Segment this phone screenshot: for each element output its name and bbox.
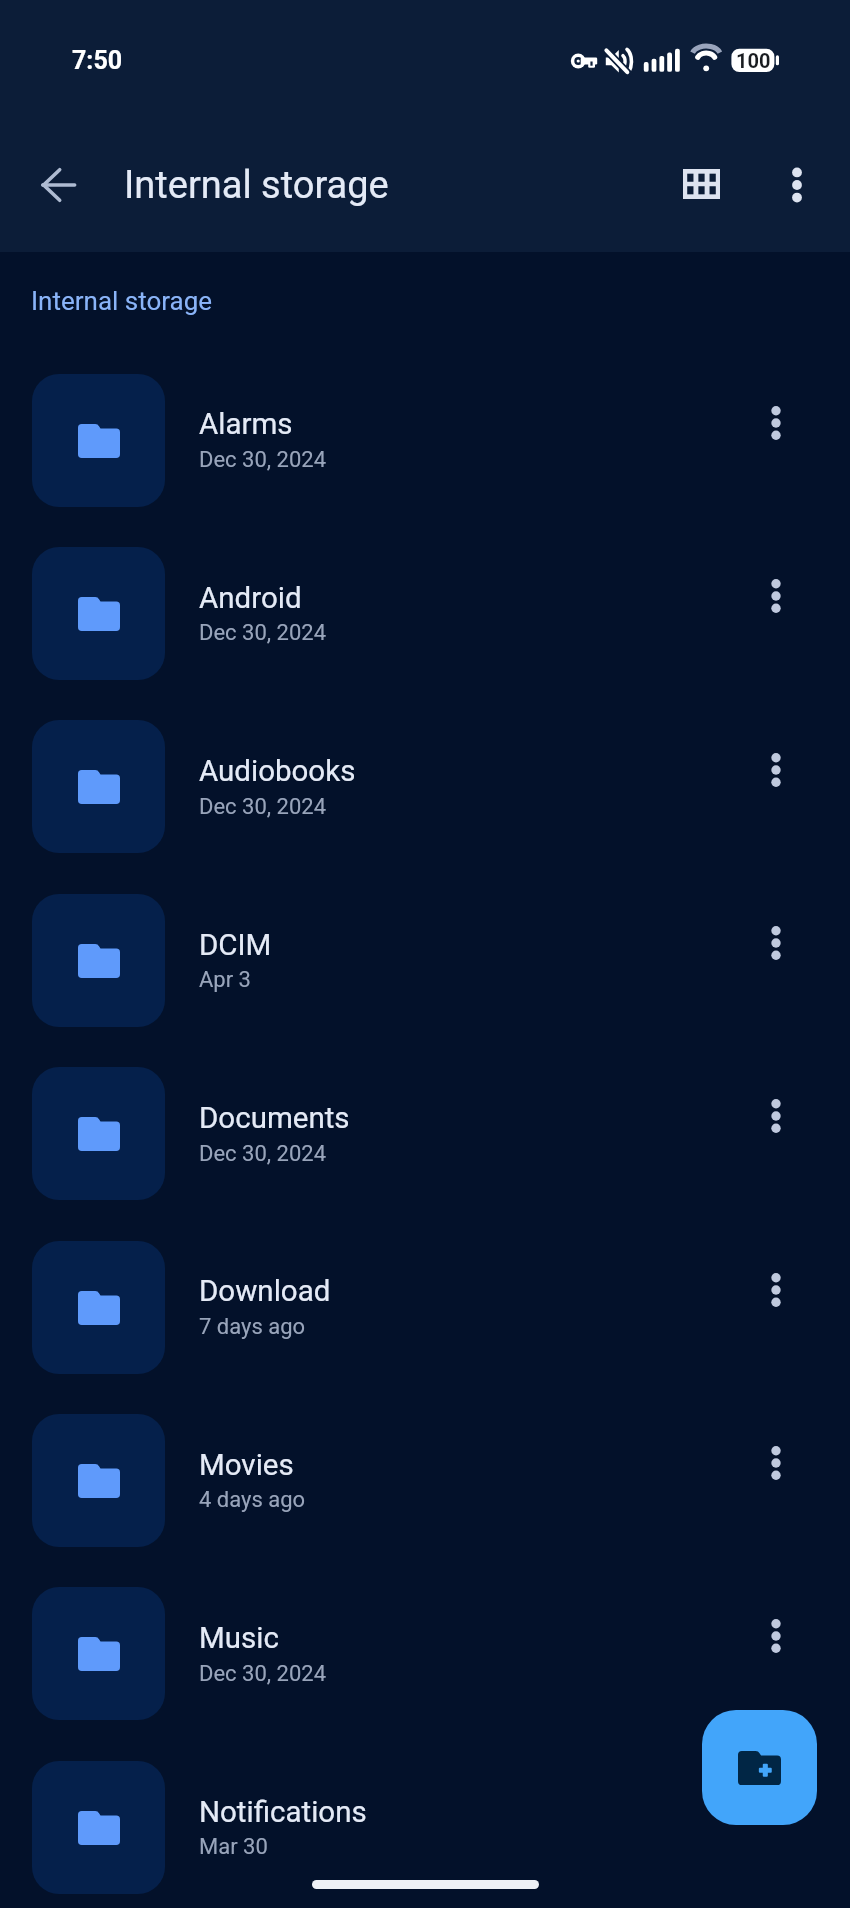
button[interactable] [0, 1566, 850, 1739]
button[interactable]: More options [738, 1425, 814, 1501]
button[interactable] [0, 699, 850, 872]
button[interactable]: Create new folder [702, 1710, 817, 1825]
button[interactable]: More options [738, 1078, 814, 1154]
button[interactable] [0, 873, 850, 1046]
staticText: Apr 3 [199, 967, 251, 993]
button[interactable]: Back [21, 148, 94, 221]
button[interactable]: More options [738, 558, 814, 634]
staticText: Notifications [199, 1795, 367, 1830]
staticText: Dec 30, 2024 [199, 794, 327, 820]
staticText: Dec 30, 2024 [199, 620, 327, 646]
staticText: 4 days ago [199, 1487, 306, 1513]
staticText: Dec 30, 2024 [199, 447, 327, 473]
button[interactable] [0, 1393, 850, 1566]
button[interactable] [0, 1220, 850, 1393]
button[interactable]: More options [738, 1598, 814, 1674]
button[interactable]: Grid view [664, 147, 738, 221]
button[interactable]: More options [738, 905, 814, 981]
staticText: Documents [199, 1101, 350, 1136]
staticText: 100 [736, 49, 771, 72]
staticText: Dec 30, 2024 [199, 1661, 327, 1687]
staticText: Alarms [199, 407, 293, 442]
staticText: 7:50 [72, 46, 123, 75]
button[interactable]: More options [738, 1252, 814, 1328]
staticText: Movies [199, 1448, 294, 1483]
button[interactable]: More options [760, 148, 834, 222]
button[interactable] [0, 353, 850, 526]
staticText: Music [199, 1621, 279, 1656]
button[interactable]: More options [738, 385, 814, 461]
button[interactable] [0, 1046, 850, 1219]
staticText: Mar 30 [199, 1834, 268, 1860]
staticText: 7 days ago [199, 1314, 306, 1340]
staticText: Download [199, 1274, 331, 1309]
staticText: Android [199, 581, 302, 616]
button[interactable] [0, 1740, 850, 1908]
button[interactable]: More options [738, 732, 814, 808]
staticText: Dec 30, 2024 [199, 1141, 327, 1167]
staticText: Internal storage [31, 286, 213, 316]
staticText: Internal storage [124, 163, 389, 208]
button[interactable] [0, 526, 850, 699]
staticText: Audiobooks [199, 754, 356, 789]
staticText: DCIM [199, 928, 272, 963]
